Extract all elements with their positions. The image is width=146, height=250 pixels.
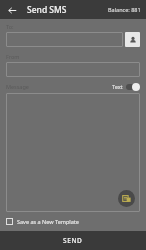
staticText: Text bbox=[112, 83, 123, 90]
staticText: SEND bbox=[63, 236, 83, 245]
button[interactable]: Text bbox=[112, 82, 140, 91]
button[interactable]: Templates bbox=[118, 190, 135, 207]
staticText: From bbox=[6, 53, 20, 60]
button[interactable]: SEND bbox=[0, 231, 146, 250]
staticText: Send SMS bbox=[27, 4, 67, 16]
staticText: Balance: 881 bbox=[108, 6, 141, 13]
button[interactable]: Templates bbox=[6, 93, 140, 212]
staticText: Save as a New Template bbox=[17, 218, 79, 225]
button[interactable]: Back bbox=[5, 3, 19, 17]
staticText: To: bbox=[6, 23, 14, 30]
button[interactable] bbox=[6, 62, 140, 77]
button[interactable] bbox=[6, 32, 123, 47]
button[interactable]: Save as a New Template bbox=[6, 216, 140, 227]
button[interactable]: Pick contact bbox=[125, 32, 140, 47]
staticText: Message bbox=[6, 83, 29, 90]
